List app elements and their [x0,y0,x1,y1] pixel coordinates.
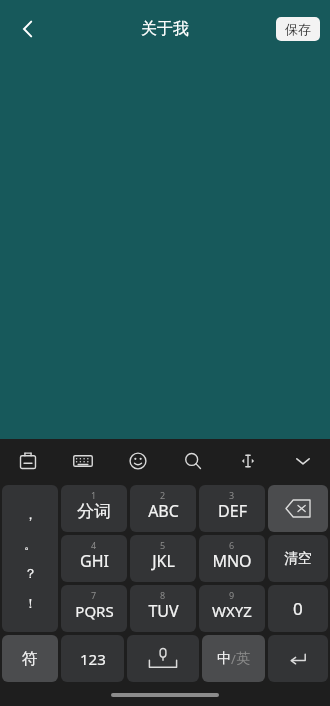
button[interactable]: Hide keyboard [275,439,330,483]
staticText: ， [24,506,37,522]
button[interactable]: Search [165,439,220,483]
staticText: 123 [80,649,106,669]
button[interactable]: 清空 [268,535,328,582]
staticText: 1 [91,489,97,501]
button[interactable]: Enter [268,635,328,682]
staticText: DEF [218,500,247,522]
button[interactable]: 9 [199,585,265,632]
staticText: 3 [229,489,235,501]
staticText: 清空 [284,550,312,568]
button[interactable]: 3 [199,485,265,532]
staticText: MNO [212,550,252,572]
button[interactable]: 保存 [276,17,320,41]
button[interactable]: ， [2,485,58,632]
button[interactable]: 5 [130,535,196,582]
staticText: 7 [91,589,97,601]
button[interactable]: 7 [61,585,127,632]
button[interactable]: 123 [61,635,124,682]
button[interactable]: Move cursor [220,439,275,483]
staticText: GHI [80,550,109,572]
staticText: 关于我 [141,19,189,39]
staticText: ！ [24,595,37,611]
staticText: WXYZ [212,601,252,621]
staticText: 4 [91,539,97,551]
staticText: 9 [229,589,235,601]
button[interactable]: 6 [199,535,265,582]
button[interactable]: Space [127,635,199,682]
staticText: 5 [160,539,166,551]
staticText: / [231,650,236,668]
staticText: 6 [229,539,235,551]
button[interactable]: 0 [268,585,328,632]
staticText: 保存 [285,21,311,37]
staticText: ？ [24,565,37,581]
staticText: TUV [148,600,179,622]
staticText: 8 [160,589,166,601]
button[interactable]: 1 [61,485,127,532]
staticText: 。 [24,536,37,552]
staticText: 符 [22,649,38,669]
button[interactable]: 4 [61,535,127,582]
button[interactable]: Clipboard [0,439,55,483]
button[interactable]: 中 [202,635,265,682]
staticText: 英 [236,650,250,668]
button[interactable]: 8 [130,585,196,632]
staticText: PQRS [75,601,114,621]
staticText: 2 [160,489,166,501]
button[interactable]: Emoji [110,439,165,483]
staticText: ABC [148,500,179,522]
button[interactable]: Keyboard layout [55,439,110,483]
button[interactable]: 符 [2,635,58,682]
button[interactable]: 2 [130,485,196,532]
staticText: 分词 [77,501,111,522]
button[interactable]: Backspace [268,485,328,532]
staticText: JKL [152,550,175,572]
staticText: 0 [293,597,303,620]
staticText: 中 [217,650,231,668]
button[interactable]: Back [6,7,50,51]
